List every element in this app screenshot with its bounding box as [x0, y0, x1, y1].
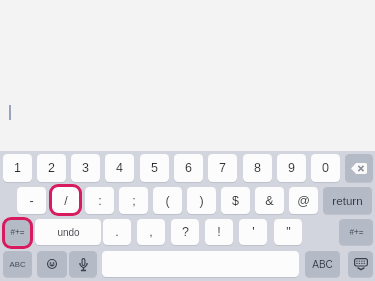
- staticText: &: [265, 194, 274, 208]
- staticText: 9: [288, 161, 295, 175]
- button[interactable]: ': [239, 219, 267, 245]
- staticText: :: [98, 194, 102, 208]
- button[interactable]: undo: [35, 219, 101, 245]
- other: Emoji: [47, 259, 57, 269]
- button[interactable]: Backspace: [345, 154, 373, 182]
- staticText: 8: [254, 161, 261, 175]
- button[interactable]: Hide keyboard: [348, 251, 373, 277]
- button[interactable]: Emoji: [37, 251, 67, 277]
- staticText: ?: [182, 225, 189, 239]
- other: Hide keyboard: [354, 258, 368, 270]
- staticText: 0: [322, 161, 329, 175]
- staticText: @: [297, 194, 310, 208]
- button[interactable]: ABC: [3, 251, 32, 277]
- button[interactable]: !: [205, 219, 233, 245]
- button[interactable]: return: [323, 187, 372, 214]
- staticText: 2: [48, 161, 55, 175]
- staticText: return: [332, 194, 363, 207]
- button[interactable]: /: [51, 187, 80, 214]
- other: Dictation: [80, 258, 87, 271]
- staticText: 6: [185, 161, 192, 175]
- staticText: $: [232, 194, 239, 208]
- button[interactable]: ;: [119, 187, 148, 214]
- staticText: ,: [149, 225, 153, 239]
- button[interactable]: 8: [243, 154, 272, 182]
- staticText: /: [64, 194, 68, 208]
- staticText: 3: [82, 161, 89, 175]
- button[interactable]: ABC: [305, 251, 340, 277]
- button[interactable]: (: [153, 187, 182, 214]
- button[interactable]: ): [187, 187, 216, 214]
- button[interactable]: @: [289, 187, 318, 214]
- button[interactable]: 2: [37, 154, 66, 182]
- button[interactable]: -: [17, 187, 46, 214]
- button[interactable]: ": [274, 219, 302, 245]
- button[interactable]: 7: [208, 154, 237, 182]
- button[interactable]: .: [103, 219, 131, 245]
- button[interactable]: ?: [171, 219, 199, 245]
- staticText: #+=: [10, 228, 25, 237]
- staticText: #+=: [349, 228, 364, 237]
- staticText: 4: [116, 161, 123, 175]
- staticText: 7: [219, 161, 226, 175]
- button[interactable]: 0: [311, 154, 340, 182]
- staticText: ): [199, 194, 204, 208]
- staticText: !: [217, 225, 221, 239]
- staticText: ABC: [9, 260, 26, 269]
- other: Backspace: [351, 163, 367, 174]
- staticText: 1: [14, 161, 21, 175]
- staticText: ": [286, 225, 291, 239]
- button[interactable]: 9: [277, 154, 306, 182]
- staticText: ': [252, 225, 255, 239]
- button[interactable]: $: [221, 187, 250, 214]
- button[interactable]: 5: [140, 154, 169, 182]
- staticText: .: [115, 225, 119, 239]
- button[interactable]: ,: [137, 219, 165, 245]
- staticText: undo: [57, 227, 80, 238]
- staticText: -: [29, 194, 34, 208]
- button[interactable]: #+=: [3, 219, 32, 245]
- button[interactable]: &: [255, 187, 284, 214]
- button[interactable]: 6: [174, 154, 203, 182]
- staticText: (: [165, 194, 170, 208]
- staticText: ABC: [312, 259, 333, 270]
- staticText: 5: [151, 161, 158, 175]
- button[interactable]: Dictation: [69, 251, 97, 277]
- button[interactable]: 1: [3, 154, 32, 182]
- button[interactable]: 3: [71, 154, 100, 182]
- button[interactable]: #+=: [339, 219, 373, 245]
- button[interactable]: 4: [105, 154, 134, 182]
- staticText: ;: [132, 194, 136, 208]
- button[interactable]: :: [85, 187, 114, 214]
